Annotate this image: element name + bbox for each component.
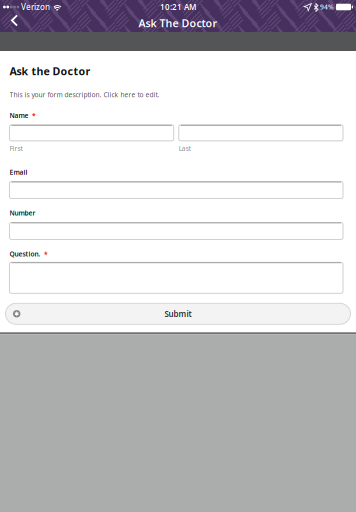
- staticText: 94%: [320, 3, 334, 11]
- staticText: Ask the Doctor: [9, 64, 90, 78]
- staticText: Submit: [164, 308, 191, 319]
- staticText: Email: [9, 168, 27, 177]
- staticText: Name: [9, 111, 28, 120]
- staticText: Ask The Doctor: [138, 16, 217, 30]
- button[interactable]: Submit: [0, 303, 356, 324]
- staticText: This is your form description. Click her…: [9, 90, 159, 99]
- staticText: Question.: [9, 249, 40, 258]
- staticText: Verizon: [21, 2, 50, 12]
- staticText: Last: [179, 144, 191, 153]
- staticText: First: [9, 144, 22, 153]
- staticText: Number: [9, 209, 35, 217]
- staticText: *: [44, 249, 48, 258]
- button[interactable]: Back: [0, 15, 28, 31]
- staticText: 10:21 AM: [160, 2, 196, 12]
- staticText: *: [32, 111, 36, 120]
